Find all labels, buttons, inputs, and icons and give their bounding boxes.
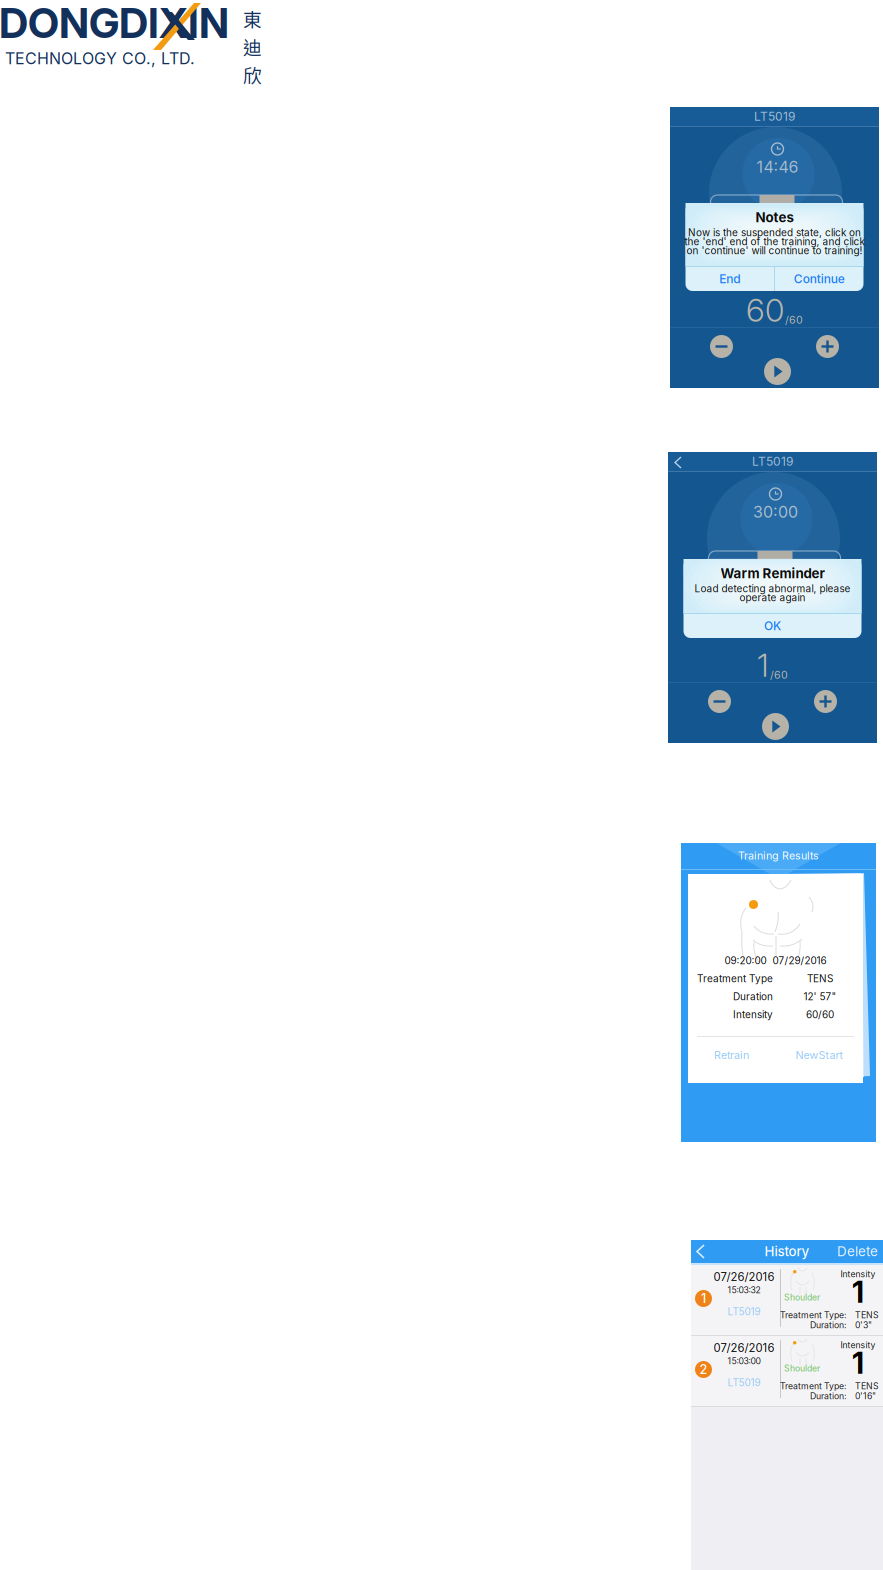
staticText: Treatment Type: [780,1381,846,1391]
staticText: 60/60 [806,1008,834,1021]
staticText: operate again [739,591,805,604]
button[interactable]: Back [691,1241,710,1262]
button[interactable]: Delete [832,1239,883,1263]
staticText: Shoulder [784,1292,820,1302]
staticText: Now is the suspended state, click on [688,226,861,239]
staticText: 30:00 [753,502,798,522]
staticText: 1 [757,646,769,684]
staticText: LT5019 [754,109,795,124]
staticText: LT5019 [727,1376,760,1389]
button[interactable]: Play [759,710,792,743]
staticText: 欣 [243,61,262,88]
staticText: Load detecting abnormal, please [694,582,850,595]
staticText: History [764,1243,809,1259]
staticText: 60 [746,291,784,329]
staticText: the 'end' end of the training, and click [684,235,864,248]
staticText: /60 [785,313,803,326]
staticText: 1 [852,1274,864,1310]
staticText: DONGDIXIN [0,0,229,48]
staticText: TENS [855,1381,879,1391]
button[interactable]: 1 [691,1265,883,1335]
staticText: NewStart [795,1048,842,1061]
staticText: TENS [807,972,833,985]
staticText: 09:20:00 07/29/2016 [724,954,826,967]
staticText: 迪 [243,33,262,60]
button[interactable]: 2 [691,1336,883,1406]
button[interactable]: Increase intensity [811,687,840,716]
button[interactable]: Continue [775,267,863,291]
staticText: 14:46 [756,157,798,177]
staticText: Duration: [810,1391,846,1401]
staticText: 1 [852,1345,864,1381]
button[interactable]: Decrease intensity [707,332,736,361]
staticText: 2 [699,1362,707,1377]
staticText: TENS [855,1310,879,1320]
button[interactable]: Decrease intensity [705,687,734,716]
staticText: Notes [755,209,793,225]
staticText: 1 [701,1291,706,1306]
staticText: 07/26/2016 [713,1341,774,1355]
staticText: Treatment Type [697,972,773,985]
button[interactable]: NewStart [775,1040,863,1070]
staticText: LT5019 [752,454,793,469]
button[interactable]: Retrain [688,1040,775,1070]
button[interactable]: End [685,267,774,291]
staticText: LT5019 [727,1305,760,1318]
staticText: Intensity [733,1008,773,1021]
staticText: 15:03:32 [727,1285,760,1295]
staticText: Treatment Type: [780,1310,846,1320]
staticText: on 'continue' will continue to training! [686,244,862,257]
staticText: Intensity [840,1269,875,1279]
staticText: 07/26/2016 [713,1270,774,1284]
staticText: 0'3" [855,1320,872,1330]
staticText: End [719,272,740,286]
staticText: TECHNOLOGY CO., LTD. [5,49,195,68]
staticText: 12' 57" [803,990,836,1003]
staticText: Duration [733,990,773,1003]
button[interactable]: Back [670,453,686,472]
staticText: OK [764,619,781,633]
button[interactable]: OK [683,614,861,638]
staticText: Intensity [840,1340,875,1350]
staticText: Retrain [714,1048,749,1061]
staticText: 東 [243,5,262,32]
staticText: 0'16" [855,1391,876,1401]
staticText: /60 [770,668,788,681]
staticText: Shoulder [784,1363,820,1373]
staticText: Duration: [810,1320,846,1330]
staticText: Training Results [738,849,819,862]
staticText: Warm Reminder [720,565,824,581]
staticText: 15:03:00 [727,1356,760,1366]
button[interactable]: Play [761,355,794,388]
staticText: Continue [794,272,845,286]
staticText: Delete [837,1243,878,1259]
button[interactable]: Increase intensity [813,332,842,361]
